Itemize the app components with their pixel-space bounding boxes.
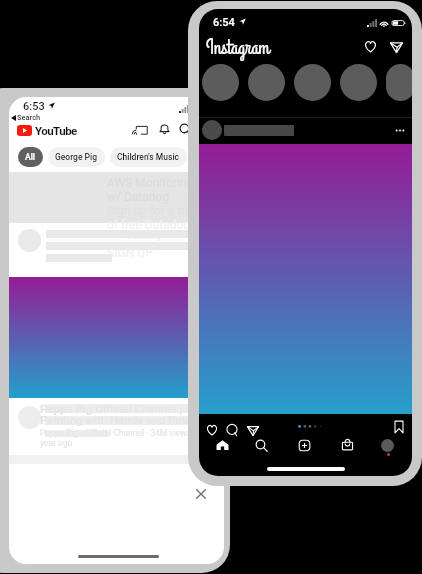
staticText: of free Datadog to [107,218,204,232]
staticText: Sign up for a trial [107,204,198,218]
button[interactable] [248,64,285,101]
staticText: 6:53 [23,100,45,113]
button[interactable]: Close [195,488,207,500]
staticText: Peppa Pig - Official Channel · 34M views… [40,428,196,448]
button[interactable]: Search [179,123,192,136]
button[interactable]: Like [206,424,218,436]
button[interactable]: All [18,147,43,167]
button[interactable]: Notifications [158,122,171,135]
button[interactable]: Direct messages [390,40,403,53]
staticText: SIGN UP [107,246,153,260]
staticText: George Pig [55,152,98,162]
button[interactable]: Share [247,424,259,436]
staticText: Datadog [127,231,161,242]
button[interactable]: Home [216,439,229,452]
button[interactable]: Save [394,420,404,434]
button[interactable]: Shop [341,438,354,451]
button[interactable] [340,64,377,101]
button[interactable]: Search [255,439,268,452]
button[interactable]: Cast [135,123,148,136]
staticText: AWS Monitoring w/ Datadog [107,176,194,204]
staticText: YouTube [35,124,77,137]
button[interactable]: More options [394,123,406,137]
staticText: Children's Music [117,152,180,162]
staticText: Peppa Pig Official Channel | Painting wi… [40,402,192,427]
button[interactable]: Profile [381,439,394,452]
button[interactable]: Children's Music [110,147,187,167]
button[interactable]: Comment [226,424,238,436]
button[interactable] [386,64,412,101]
staticText: Instagram [206,34,270,61]
button[interactable] [294,64,331,101]
button[interactable]: Create [298,439,311,452]
button[interactable]: Activity [364,40,377,53]
staticText: Search [17,113,41,122]
staticText: All [25,152,36,162]
staticText: 6:54 [213,16,235,29]
button[interactable] [202,64,239,101]
button[interactable]: George Pig [48,147,105,167]
